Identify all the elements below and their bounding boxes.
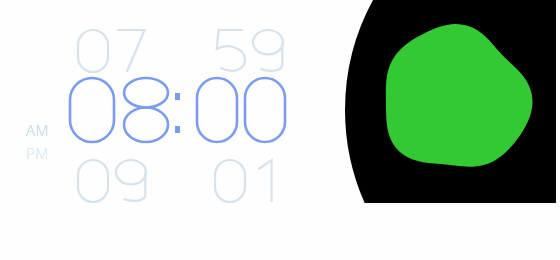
button[interactable]: AM [26,120,50,163]
button[interactable]: Green indicator [0,0,560,260]
button[interactable]: Time picker, 08:00 AM [0,0,360,260]
staticText: PM [26,143,49,163]
staticText: AM [26,120,50,140]
